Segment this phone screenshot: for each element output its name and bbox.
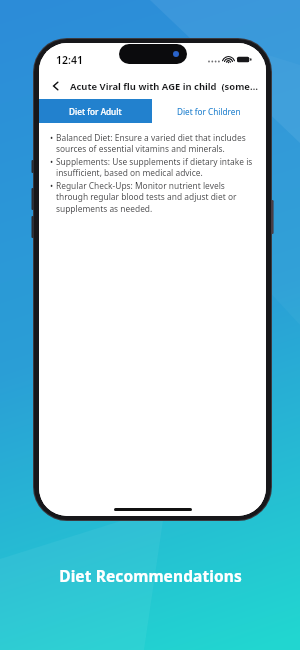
staticText: Diet Recommendations — [59, 565, 242, 586]
staticText: Regular Check-Ups: Monitor nutrient leve… — [56, 180, 255, 215]
button[interactable]: Diet for Children — [152, 99, 266, 123]
button[interactable]: Diet for Adult — [39, 99, 152, 123]
staticText: 12:41 — [56, 53, 83, 67]
staticText: Diet for Children — [177, 106, 241, 117]
staticText: • — [50, 156, 54, 167]
staticText: Supplements: Use supplements if dietary … — [56, 156, 255, 179]
staticText: Diet for Adult — [69, 106, 122, 117]
staticText: • — [50, 132, 54, 143]
staticText: • — [50, 180, 54, 191]
staticText: Acute Viral flu with AGE in child (some … — [70, 80, 258, 93]
staticText: Balanced Diet: Ensure a varied diet that… — [56, 132, 255, 155]
button[interactable]: Back — [47, 77, 65, 95]
